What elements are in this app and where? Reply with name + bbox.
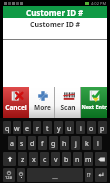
button[interactable]: p [98, 121, 107, 134]
button[interactable]: r [33, 121, 41, 134]
staticText: Cancel [5, 103, 27, 112]
button[interactable]: s [18, 136, 26, 150]
button[interactable]: Delete [95, 152, 107, 166]
staticText: b [64, 155, 69, 165]
staticText: x [32, 155, 36, 165]
staticText: f [41, 139, 44, 149]
button[interactable]: o [87, 121, 96, 134]
staticText: q [5, 124, 10, 134]
button[interactable]: Numbers [3, 168, 15, 182]
button[interactable]: Space [27, 168, 83, 182]
button[interactable]: Shift [3, 152, 16, 166]
button[interactable]: Voice input [17, 168, 25, 182]
staticText: n [75, 155, 80, 165]
button[interactable]: b [62, 152, 71, 166]
button[interactable]: h [60, 136, 69, 150]
staticText: y [57, 124, 61, 134]
button[interactable]: k [82, 136, 91, 150]
staticText: s [20, 139, 24, 149]
button[interactable]: Return [95, 168, 107, 182]
button[interactable]: n [73, 152, 82, 166]
staticText: d [30, 139, 35, 149]
button[interactable]: Punctuation [85, 168, 93, 182]
staticText: 12# [5, 175, 13, 180]
button[interactable]: Cancel [3, 87, 29, 118]
staticText: r [36, 124, 39, 134]
button[interactable]: c [40, 152, 49, 166]
button[interactable]: t [43, 121, 52, 134]
staticText: k [85, 139, 89, 149]
staticText: u [67, 124, 72, 134]
staticText: m [85, 155, 92, 165]
button[interactable]: f [38, 136, 47, 150]
staticText: z [21, 155, 25, 165]
staticText: e [25, 124, 29, 134]
button[interactable]: Next Entry [81, 87, 107, 118]
staticText: !? [87, 172, 91, 179]
staticText: w [14, 124, 20, 134]
button[interactable]: d [28, 136, 36, 150]
staticText: Scan [60, 103, 76, 112]
staticText: Next Entry [81, 103, 107, 110]
button[interactable]: u [65, 121, 74, 134]
button[interactable]: e [23, 121, 31, 134]
button[interactable]: a [8, 136, 16, 150]
staticText: g [51, 139, 56, 149]
staticText: Customer ID # [26, 7, 84, 18]
button[interactable]: m [84, 152, 93, 166]
staticText: j [75, 139, 77, 149]
staticText: p [100, 124, 105, 134]
button[interactable]: y [54, 121, 63, 134]
button[interactable]: Scan [55, 87, 81, 118]
staticText: v [54, 155, 58, 165]
staticText: l [97, 139, 99, 149]
staticText: h [62, 139, 67, 149]
staticText: i [80, 124, 82, 134]
button[interactable]: j [71, 136, 80, 150]
button[interactable]: v [51, 152, 60, 166]
button[interactable]: x [29, 152, 38, 166]
button[interactable]: q [3, 121, 11, 134]
staticText: c [43, 155, 47, 165]
staticText: More [34, 103, 51, 112]
button[interactable]: l [93, 136, 102, 150]
staticText: 4:02 PM [91, 1, 107, 6]
button[interactable]: g [49, 136, 58, 150]
staticText: a [10, 139, 14, 149]
button[interactable]: w [13, 121, 21, 134]
button[interactable]: i [76, 121, 85, 134]
staticText: o [89, 124, 94, 134]
staticText: t [46, 124, 49, 134]
button[interactable]: z [18, 152, 27, 166]
staticText: Customer ID # [30, 20, 81, 30]
button[interactable]: More [29, 87, 55, 118]
